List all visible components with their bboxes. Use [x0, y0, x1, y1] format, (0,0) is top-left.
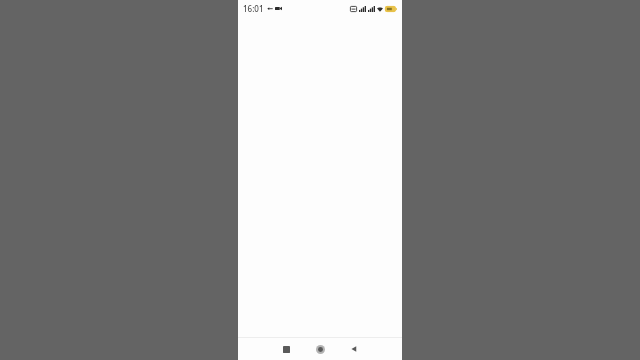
staticText: 16:01: [243, 3, 264, 14]
button[interactable]: Recent apps: [275, 338, 297, 360]
button[interactable]: Back: [343, 338, 365, 360]
button[interactable]: Home: [309, 338, 331, 360]
